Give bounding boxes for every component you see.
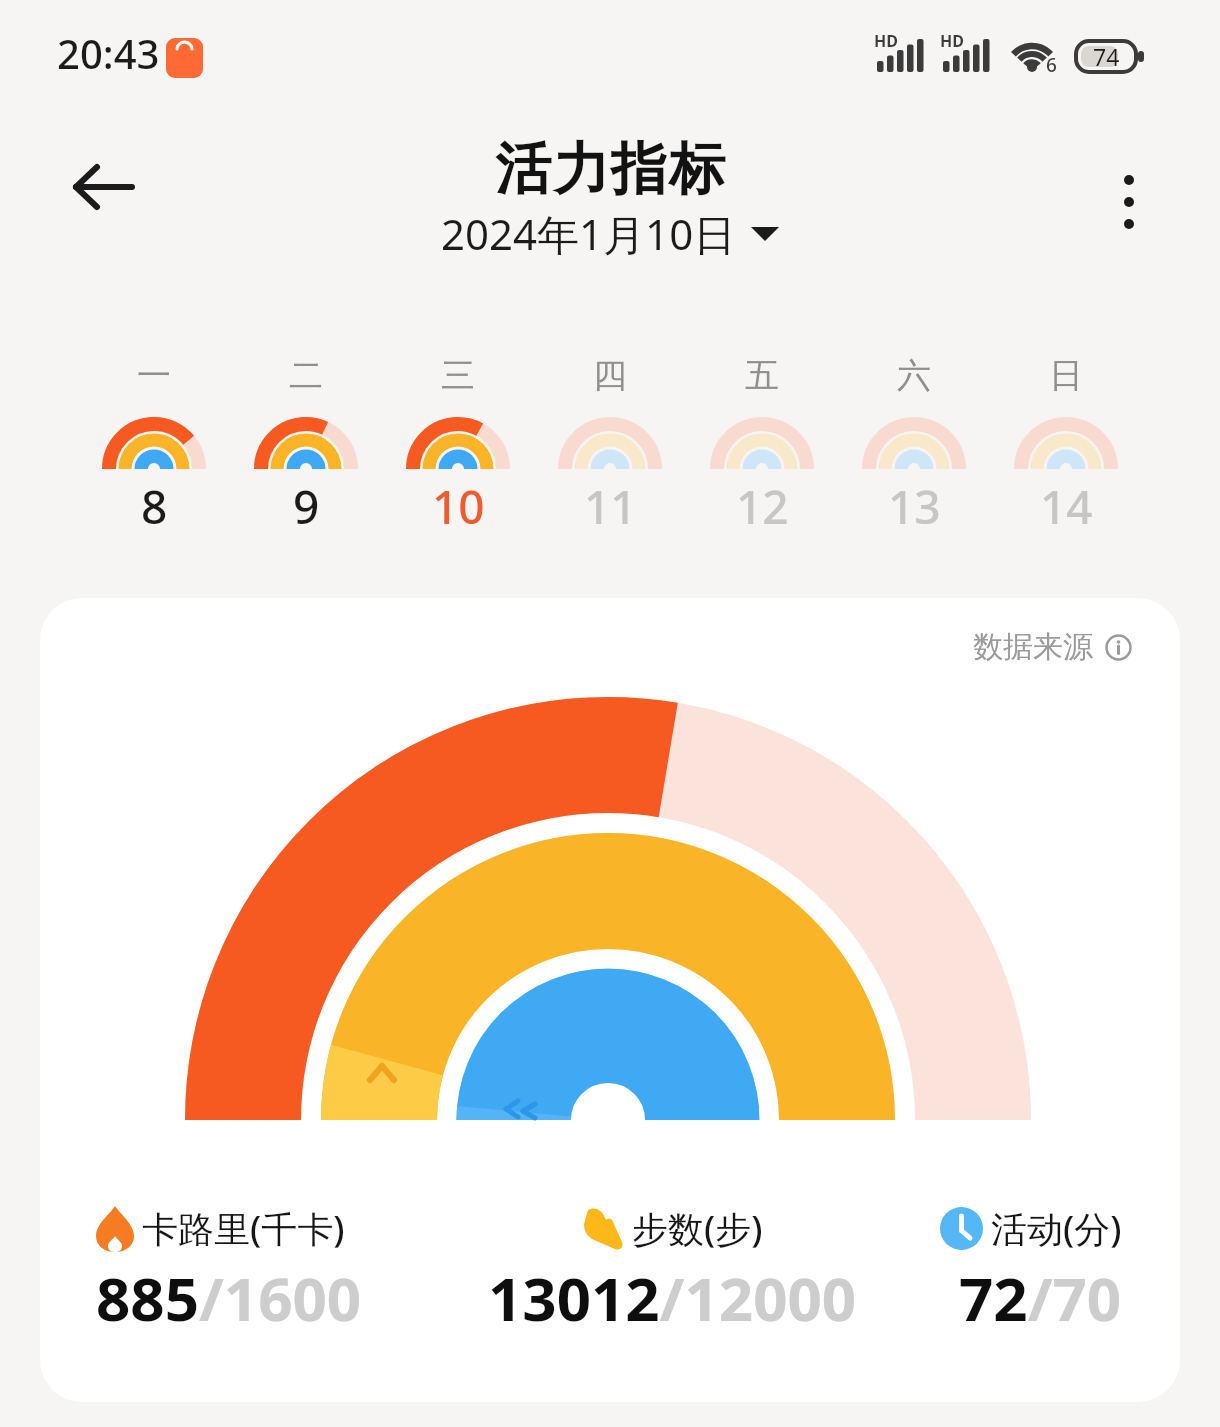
staticText: 8 (141, 475, 168, 538)
staticText: 一 (137, 354, 171, 397)
staticText: 步数(步) (632, 1204, 763, 1253)
button[interactable]: 六 (838, 354, 990, 538)
staticText: 卡路里(千卡) (142, 1204, 345, 1253)
staticText: 10 (432, 475, 485, 538)
staticText: 9 (293, 475, 320, 538)
staticText: 2024年1月10日 (441, 205, 736, 262)
staticText: 二 (289, 354, 323, 397)
staticText: 五 (745, 354, 779, 397)
staticText: 11 (584, 475, 637, 538)
button[interactable] (56, 148, 156, 228)
button[interactable]: 日 (990, 354, 1142, 538)
staticText: 活动(分) (991, 1204, 1122, 1253)
button[interactable]: 四 (534, 354, 686, 538)
staticText: HD (940, 30, 964, 52)
staticText: 三 (441, 354, 475, 397)
button[interactable]: 二 (230, 354, 382, 538)
button[interactable]: 数据来源 (973, 628, 1132, 666)
staticText: 六 (897, 354, 931, 397)
button[interactable]: 2024年1月10日 (441, 205, 780, 262)
staticText: 12 (736, 475, 789, 538)
staticText: 20:43 (57, 26, 160, 80)
staticText: HD (874, 30, 898, 52)
staticText: 14 (1040, 475, 1093, 538)
staticText: 四 (593, 354, 627, 397)
staticText: 72/70 (959, 1257, 1122, 1339)
button[interactable]: 五 (686, 354, 838, 538)
staticText: 74 (1093, 41, 1120, 72)
staticText: 13 (888, 475, 941, 538)
staticText: 6 (1046, 52, 1057, 78)
button[interactable]: 三 (382, 354, 534, 538)
staticText: 数据来源 (973, 628, 1093, 666)
button[interactable]: 一 (78, 354, 230, 538)
staticText: 活力指标 (494, 134, 726, 205)
button[interactable] (1098, 158, 1158, 248)
staticText: 日 (1049, 354, 1083, 397)
staticText: 13012/12000 (488, 1257, 857, 1339)
staticText: 885/1600 (96, 1257, 362, 1339)
